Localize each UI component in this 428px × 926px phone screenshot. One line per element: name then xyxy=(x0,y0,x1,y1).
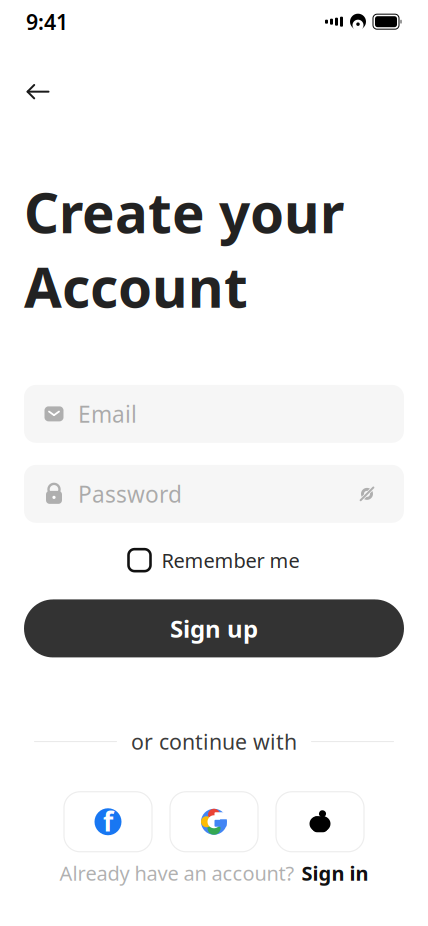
button[interactable]: Sign up with Apple xyxy=(276,792,364,852)
staticText: Email xyxy=(78,399,137,429)
button[interactable]: Sign up with Facebook xyxy=(64,792,152,852)
button[interactable]: Sign in xyxy=(301,860,368,886)
staticText: 9:41 xyxy=(26,7,68,36)
button[interactable]: Sign up with Google xyxy=(170,792,258,852)
staticText: Remember me xyxy=(161,547,299,573)
button[interactable]: Show password xyxy=(350,477,384,511)
staticText: or continue with xyxy=(131,727,297,756)
button[interactable]: Remember me xyxy=(128,543,299,577)
button[interactable]: Sign up xyxy=(24,599,404,657)
staticText: Already have an account? xyxy=(59,860,294,886)
staticText: Account xyxy=(24,250,248,323)
staticText: Create your xyxy=(24,176,344,248)
staticText: Sign up xyxy=(170,612,258,644)
staticText: Password xyxy=(78,479,182,509)
staticText: f xyxy=(103,804,113,839)
staticText: Sign in xyxy=(301,860,368,886)
button[interactable]: Back xyxy=(16,70,60,114)
